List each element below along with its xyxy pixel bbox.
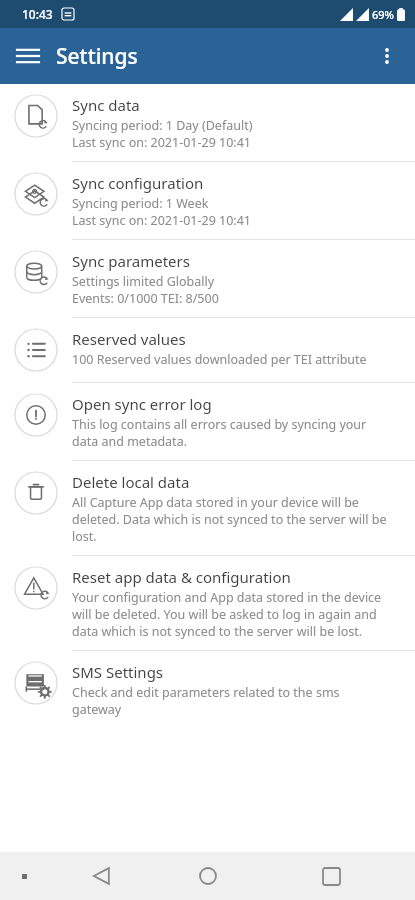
- staticText: data and metadata.: [72, 433, 187, 450]
- button[interactable]: Sync data: [0, 84, 415, 161]
- staticText: Events: 0/1000 TEI: 8/500: [72, 290, 219, 307]
- button[interactable]: Reset app data & configuration: [0, 556, 415, 650]
- button[interactable]: Open sync error log: [0, 383, 415, 460]
- staticText: Delete local data: [72, 472, 190, 492]
- staticText: Last sync on: 2021-01-29 10:41: [72, 212, 251, 229]
- button[interactable]: SMS Settings: [0, 651, 415, 728]
- staticText: All Capture App data stored in your devi…: [72, 494, 359, 511]
- staticText: deleted. Data which is not synced to the…: [72, 511, 387, 528]
- staticText: Reset app data & configuration: [72, 567, 291, 587]
- staticText: 100 Reserved values downloaded per TEI a…: [72, 351, 367, 368]
- staticText: lost.: [72, 528, 97, 545]
- staticText: Syncing period: 1 Week: [72, 195, 209, 212]
- staticText: will be deleted. You will be asked to lo…: [72, 606, 377, 623]
- staticText: Last sync on: 2021-01-29 10:41: [72, 134, 251, 151]
- button[interactable]: Delete local data: [0, 461, 415, 555]
- staticText: gateway: [72, 701, 122, 718]
- staticText: Settings limited Globally: [72, 273, 215, 290]
- staticText: data which is not synced to the server w…: [72, 623, 363, 640]
- staticText: Sync data: [72, 95, 140, 115]
- button[interactable]: Sync parameters: [0, 240, 415, 317]
- staticText: Open sync error log: [72, 394, 212, 414]
- button[interactable]: Open navigation menu: [4, 32, 52, 80]
- staticText: Sync configuration: [72, 173, 204, 193]
- button[interactable]: More options: [363, 32, 411, 80]
- staticText: Settings: [56, 42, 138, 71]
- staticText: Sync parameters: [72, 251, 190, 271]
- button[interactable]: Reserved values: [0, 318, 415, 382]
- staticText: This log contains all errors caused by s…: [72, 416, 367, 433]
- button[interactable]: Recent apps: [307, 852, 355, 900]
- staticText: Check and edit parameters related to the…: [72, 684, 340, 701]
- staticText: Your configuration and App data stored i…: [72, 589, 382, 606]
- staticText: 69%: [372, 7, 394, 22]
- button[interactable]: Home: [184, 852, 232, 900]
- staticText: SMS Settings: [72, 662, 164, 682]
- button[interactable]: Back: [78, 852, 126, 900]
- staticText: Reserved values: [72, 329, 186, 349]
- button[interactable]: Sync configuration: [0, 162, 415, 239]
- staticText: 10:43: [22, 6, 53, 22]
- staticText: Syncing period: 1 Day (Default): [72, 117, 253, 134]
